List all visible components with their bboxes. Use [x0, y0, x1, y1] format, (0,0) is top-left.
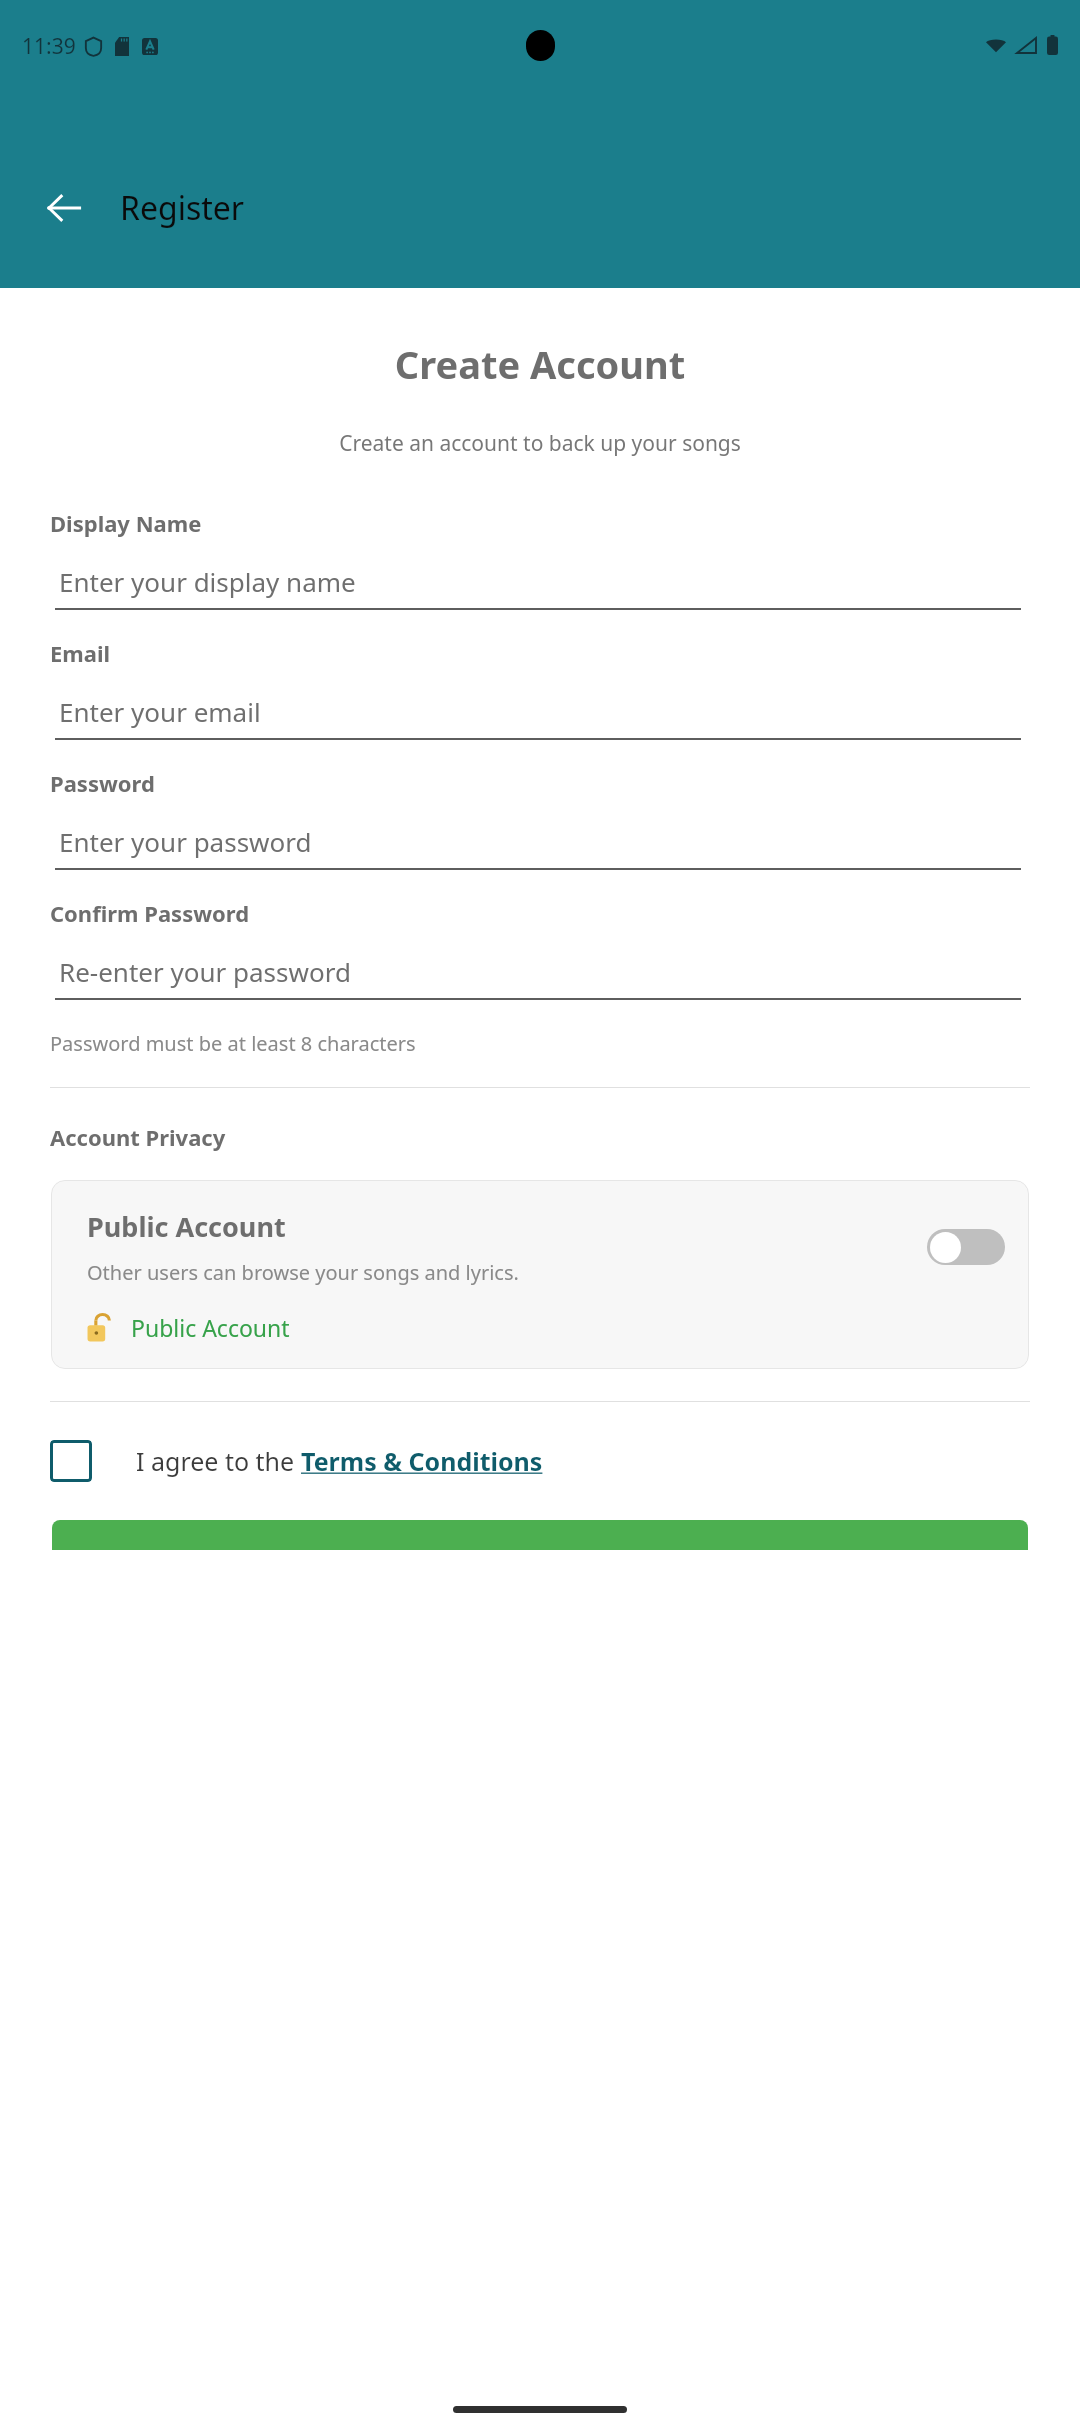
- staticText: Confirm Password: [50, 898, 250, 928]
- staticText: Public Account: [87, 1208, 286, 1245]
- button[interactable]: Re-enter your password: [55, 954, 1021, 1000]
- button[interactable]: Back: [28, 172, 100, 244]
- button[interactable]: Agree checkbox: [50, 1440, 1030, 1482]
- staticText: Re-enter your password: [59, 954, 351, 989]
- button[interactable]: Enter your email: [55, 694, 1021, 740]
- button[interactable]: Enter your password: [55, 824, 1021, 870]
- button[interactable]: Enter your display name: [55, 564, 1021, 610]
- staticText: Create an account to back up your songs: [0, 429, 1080, 458]
- staticText: Enter your display name: [59, 564, 356, 599]
- staticText: Enter your password: [59, 824, 312, 859]
- button[interactable]: [52, 1520, 1028, 1550]
- staticText: 11:39: [22, 32, 76, 61]
- staticText: Register: [120, 186, 245, 230]
- staticText: Enter your email: [59, 694, 261, 729]
- staticText: Account Privacy: [50, 1122, 226, 1152]
- button[interactable]: Agree checkbox: [50, 1440, 92, 1482]
- staticText: Password: [50, 768, 155, 798]
- staticText: I agree to the: [136, 1444, 301, 1478]
- staticText: Email: [50, 638, 111, 668]
- button[interactable]: Terms & Conditions: [301, 1444, 543, 1478]
- staticText: Display Name: [50, 508, 202, 538]
- staticText: Public Account: [131, 1312, 290, 1343]
- staticText: Other users can browse your songs and ly…: [87, 1259, 519, 1286]
- staticText: Password must be at least 8 characters: [50, 1030, 416, 1057]
- staticText: Create Account: [0, 338, 1080, 390]
- button[interactable]: Public Account toggle: [927, 1226, 1005, 1268]
